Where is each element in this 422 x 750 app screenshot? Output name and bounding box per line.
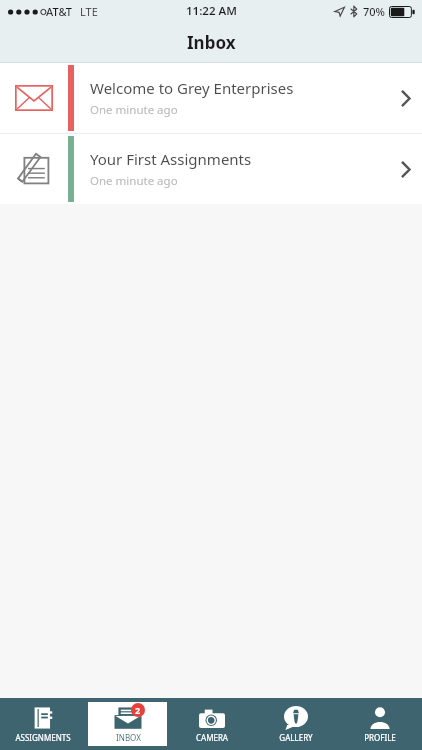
button[interactable]: CAMERA [173, 702, 251, 746]
button[interactable]: ASSIGNMENTS [3, 702, 82, 746]
staticText: One minute ago [90, 173, 178, 189]
staticText: AT&T [46, 4, 73, 19]
staticText: One minute ago [90, 102, 178, 118]
button[interactable]: Assignment [0, 134, 422, 204]
staticText: Inbox [187, 31, 236, 54]
staticText: CAMERA [196, 732, 228, 743]
staticText: PROFILE [364, 732, 396, 743]
staticText: INBOX [116, 732, 141, 743]
staticText: Your First Assignments [90, 149, 252, 169]
button[interactable]: PROFILE [341, 702, 419, 746]
staticText: LTE [80, 4, 98, 19]
staticText: ASSIGNMENTS [15, 732, 71, 743]
other: Message [15, 85, 53, 111]
button[interactable]: Message [0, 63, 422, 133]
button[interactable]: 2 [88, 702, 167, 746]
staticText: Welcome to Grey Enterprises [90, 78, 294, 98]
staticText: GALLERY [279, 732, 313, 743]
button[interactable]: GALLERY [257, 702, 335, 746]
other: Assignment [14, 149, 54, 189]
staticText: 11:22 AM [186, 3, 237, 19]
staticText: 70% [363, 4, 385, 19]
staticText: 2 [135, 704, 141, 716]
